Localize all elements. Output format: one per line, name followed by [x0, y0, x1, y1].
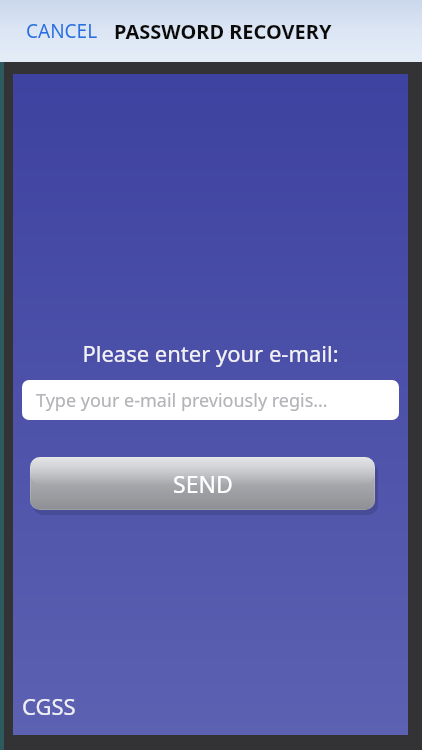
staticText: PASSWORD RECOVERY [114, 18, 332, 45]
button[interactable]: SEND [30, 457, 375, 510]
button[interactable]: Type your e-mail previously regis… [22, 380, 399, 420]
staticText: Type your e-mail previously regis… [36, 388, 328, 413]
staticText: SEND [173, 468, 233, 499]
staticText: CANCEL [26, 18, 98, 44]
staticText: CGSS [22, 691, 76, 721]
button[interactable]: CANCEL [20, 12, 104, 50]
staticText: Please enter your e-mail: [82, 338, 339, 368]
